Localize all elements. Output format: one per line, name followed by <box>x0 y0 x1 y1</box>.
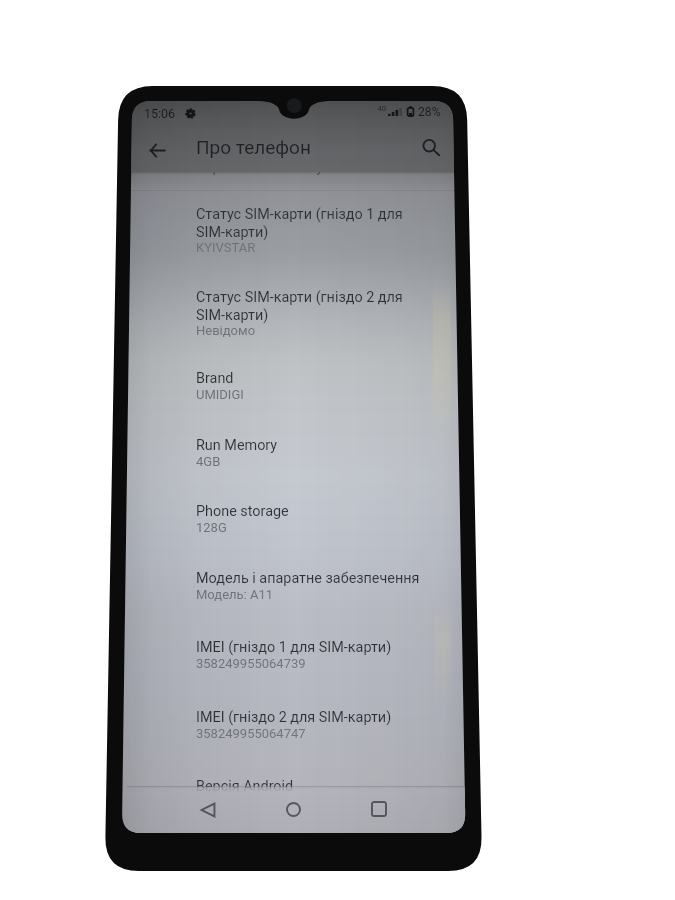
staticText: Модель: A11 <box>196 587 274 602</box>
staticText: Невідомо <box>196 323 256 338</box>
staticText: IMEI (гніздо 1 для SIM-карти) <box>196 639 392 656</box>
staticText: Версія Android <box>196 778 294 795</box>
staticText: Про телефон <box>196 136 311 158</box>
button[interactable]: Recents <box>358 788 400 832</box>
staticText: Run Memory <box>196 437 278 454</box>
button[interactable]: Search <box>410 134 446 168</box>
button[interactable]: Phone storage <box>127 499 466 539</box>
staticText: KYIVSTAR <box>196 240 256 255</box>
staticText: 4G <box>378 105 387 113</box>
staticText: 15:06 <box>144 106 176 121</box>
button[interactable]: Brand <box>127 366 466 406</box>
button[interactable]: Версія Android <box>127 774 466 799</box>
staticText: Статус SIM-карти (гніздо 2 для SIM-карти… <box>196 289 403 323</box>
staticText: 358249955064739 <box>196 656 306 671</box>
staticText: 28% <box>418 105 441 119</box>
staticText: UMIDIGI <box>196 387 244 402</box>
staticText: Brand <box>196 370 234 387</box>
staticText: 358249955064747 <box>196 726 306 741</box>
button[interactable]: Home <box>273 788 315 832</box>
button[interactable]: IMEI (гніздо 1 для SIM-карти) <box>127 635 466 675</box>
staticText: Модель і апаратне забезпечення <box>196 570 420 587</box>
staticText: 128G <box>196 520 227 535</box>
staticText: Версія базової смуги <box>196 159 338 176</box>
staticText: 4GB <box>196 454 221 469</box>
button[interactable]: Статус SIM-карти (гніздо 1 для SIM-карти… <box>127 202 466 259</box>
staticText: Phone storage <box>196 503 289 520</box>
staticText: Статус SIM-карти (гніздо 1 для SIM-карти… <box>196 206 403 240</box>
staticText: IMEI (гніздо 2 для SIM-карти) <box>196 709 392 726</box>
button[interactable]: Модель і апаратне забезпечення <box>127 566 466 606</box>
button[interactable]: Статус SIM-карти (гніздо 2 для SIM-карти… <box>127 285 466 342</box>
button[interactable]: IMEI (гніздо 2 для SIM-карти) <box>127 705 466 745</box>
button[interactable]: Run Memory <box>127 433 466 473</box>
button[interactable]: Back <box>187 788 229 832</box>
button[interactable]: Back <box>139 133 177 169</box>
